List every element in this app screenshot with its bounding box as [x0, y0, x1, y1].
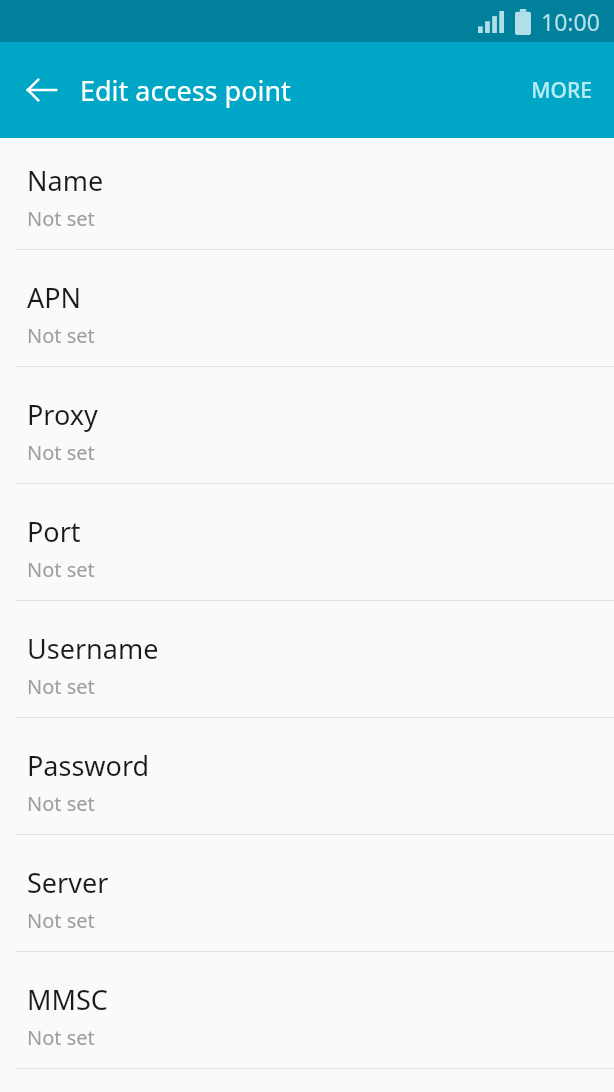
- button[interactable]: APN: [0, 255, 614, 372]
- staticText: Name: [27, 162, 104, 199]
- button[interactable]: Username: [0, 606, 614, 723]
- staticText: Not set: [27, 439, 95, 466]
- staticText: Port: [27, 513, 81, 550]
- staticText: MORE: [531, 76, 592, 105]
- staticText: Username: [27, 630, 159, 667]
- staticText: Not set: [27, 556, 95, 583]
- staticText: Proxy: [27, 396, 98, 433]
- button[interactable]: Server: [0, 840, 614, 957]
- button[interactable]: Proxy: [0, 372, 614, 489]
- staticText: Not set: [27, 322, 95, 349]
- button[interactable]: MMSC: [0, 957, 614, 1074]
- staticText: Not set: [27, 673, 95, 700]
- staticText: Not set: [27, 907, 95, 934]
- staticText: Not set: [27, 790, 95, 817]
- button[interactable]: Password: [0, 723, 614, 840]
- staticText: Edit access point: [80, 72, 291, 109]
- staticText: APN: [27, 279, 82, 316]
- staticText: 10:00: [541, 6, 600, 37]
- button[interactable]: Navigate up: [14, 62, 70, 118]
- staticText: Not set: [27, 1024, 95, 1051]
- button[interactable]: MORE: [509, 60, 614, 121]
- staticText: MMSC: [27, 981, 108, 1018]
- staticText: Not set: [27, 205, 95, 232]
- button[interactable]: Name: [0, 138, 614, 255]
- staticText: Password: [27, 747, 150, 784]
- staticText: Server: [27, 864, 109, 901]
- button[interactable]: Port: [0, 489, 614, 606]
